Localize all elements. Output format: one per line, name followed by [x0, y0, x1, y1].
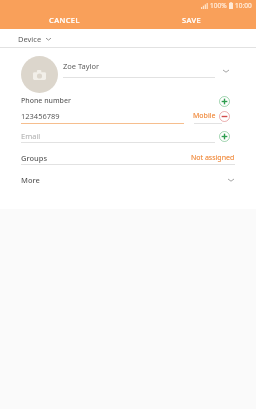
staticText: Mobile: [193, 111, 216, 121]
staticText: 100%: [210, 1, 227, 10]
staticText: 10:00: [235, 1, 252, 10]
button[interactable]: Change photo: [21, 56, 58, 93]
button[interactable]: CANCEL: [0, 11, 128, 29]
staticText: Device: [18, 34, 42, 44]
button[interactable]: Device: [18, 34, 51, 44]
staticText: Zoe Taylor: [63, 61, 100, 71]
button[interactable]: Mobile: [193, 111, 216, 121]
button[interactable]: Remove phone number: [218, 110, 230, 122]
button[interactable]: SAVE: [128, 11, 256, 29]
staticText: CANCEL: [49, 15, 80, 25]
button[interactable]: Email: [21, 131, 41, 141]
button[interactable]: Zoe Taylor: [63, 56, 233, 78]
button[interactable]: Add email: [218, 130, 230, 142]
button[interactable]: 123456789: [21, 111, 60, 121]
button[interactable]: Add phone number: [218, 95, 230, 107]
button[interactable]: Groups: [0, 146, 256, 169]
staticText: 123456789: [21, 111, 60, 121]
staticText: Phone number: [21, 96, 71, 106]
staticText: SAVE: [182, 15, 202, 25]
button[interactable]: More: [0, 169, 256, 191]
staticText: Email: [21, 131, 41, 141]
staticText: Groups: [21, 153, 48, 163]
staticText: More: [21, 175, 40, 185]
staticText: Not assigned: [191, 153, 235, 163]
